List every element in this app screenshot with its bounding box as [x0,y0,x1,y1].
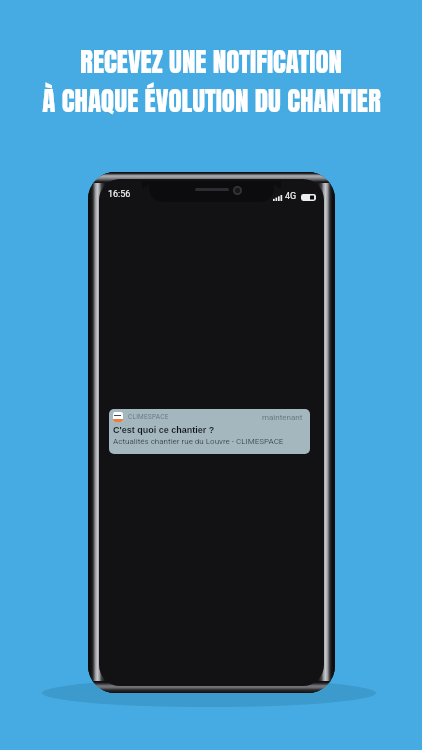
staticText: 16:56 [108,189,131,200]
staticText: 4G [285,191,297,202]
staticText: RECEVEZ UNE NOTIFICATION [80,41,342,82]
staticText: CLIMESPACE [128,413,169,421]
other: CLIMESPACE app icon [113,412,123,422]
staticText: C'est quoi ce chantier ? [113,425,215,435]
button[interactable]: CLIMESPACE app icon [109,409,310,454]
staticText: Actualités chantier rue du Louvre - CLIM… [113,437,284,446]
staticText: À CHAQUE ÉVOLUTION DU CHANTIER [42,80,381,121]
staticText: maintenant [262,413,303,422]
